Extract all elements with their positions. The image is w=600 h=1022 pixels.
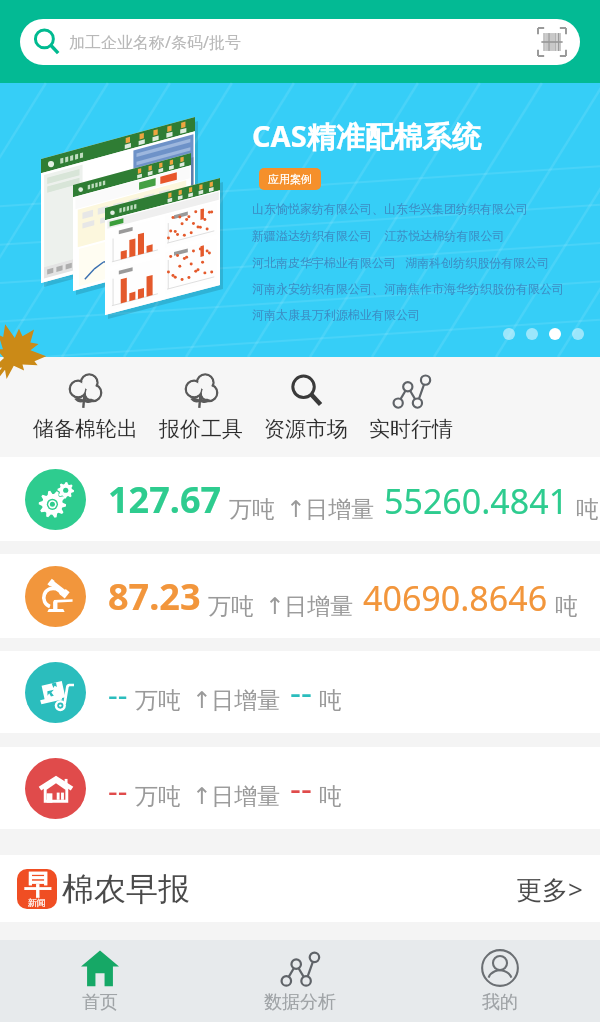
staticText: 加工企业名称/条码/批号 [69, 31, 241, 53]
staticText: -- [108, 674, 128, 715]
button[interactable]: 储备棉轮出 [28, 372, 143, 442]
staticText: 40690.8646 [363, 575, 548, 621]
button[interactable]: 127.67 [0, 457, 600, 541]
button[interactable]: 早 [0, 855, 600, 922]
staticText: -- [290, 765, 312, 811]
staticText: 55260.4841 [384, 478, 569, 524]
staticText: 127.67 [108, 475, 222, 524]
staticText: 储备棉轮出 [33, 416, 138, 442]
staticText: 河南太康县万利源棉业有限公司 [252, 307, 420, 322]
staticText: -- [290, 669, 312, 715]
staticText: ↑日增量 [265, 592, 354, 621]
staticText: 更多> [516, 871, 583, 907]
other: Scan barcode [538, 28, 566, 56]
staticText: ↑日增量 [192, 782, 281, 811]
button[interactable]: 报价工具 [154, 372, 248, 442]
staticText: 万吨 [135, 686, 181, 715]
button[interactable]: 数据分析 [200, 940, 400, 1022]
staticText: 数据分析 [264, 991, 336, 1014]
button[interactable]: 87.23 [0, 554, 600, 638]
button[interactable]: -- [0, 651, 600, 733]
staticText: 我的 [482, 991, 518, 1014]
staticText: 87.23 [108, 572, 201, 621]
button[interactable]: 我的 [400, 940, 600, 1022]
staticText: 吨 [555, 592, 578, 621]
staticText: 河南永安纺织有限公司、河南焦作市海华纺织股份有限公司 [252, 281, 564, 296]
staticText: 吨 [576, 495, 586, 524]
staticText: 首页 [82, 991, 118, 1014]
staticText: 新疆溢达纺织有限公司 江苏悦达棉纺有限公司 [252, 227, 505, 243]
staticText: 万吨 [135, 782, 181, 811]
button[interactable]: 实时行情 [364, 372, 458, 442]
staticText: 实时行情 [369, 416, 453, 442]
staticText: 资源市场 [264, 416, 348, 442]
button[interactable]: 资源市场 [259, 372, 353, 442]
button[interactable]: CAS精准配棉系统 [0, 83, 600, 357]
staticText: 新闻 [28, 897, 46, 908]
staticText: ↑日增量 [286, 495, 375, 524]
staticText: 河北南皮华宇棉业有限公司 湖南科创纺织股份有限公司 [252, 254, 550, 270]
staticText: 山东愉悦家纺有限公司、山东华兴集团纺织有限公司 [252, 201, 528, 216]
staticText: 棉农早报 [62, 869, 190, 909]
button[interactable]: 加工企业名称/条码/批号 [20, 19, 580, 65]
staticText: 报价工具 [159, 416, 243, 442]
staticText: ↑日增量 [192, 686, 281, 715]
staticText: 吨 [319, 686, 342, 715]
button[interactable]: -- [0, 747, 600, 829]
staticText: 万吨 [208, 592, 254, 621]
button[interactable]: 首页 [0, 940, 200, 1022]
staticText: CAS精准配棉系统 [252, 116, 481, 156]
staticText: -- [108, 770, 128, 811]
staticText: 应用案例 [268, 172, 312, 186]
staticText: 万吨 [229, 495, 275, 524]
staticText: 早 [24, 869, 51, 902]
staticText: 吨 [319, 782, 342, 811]
